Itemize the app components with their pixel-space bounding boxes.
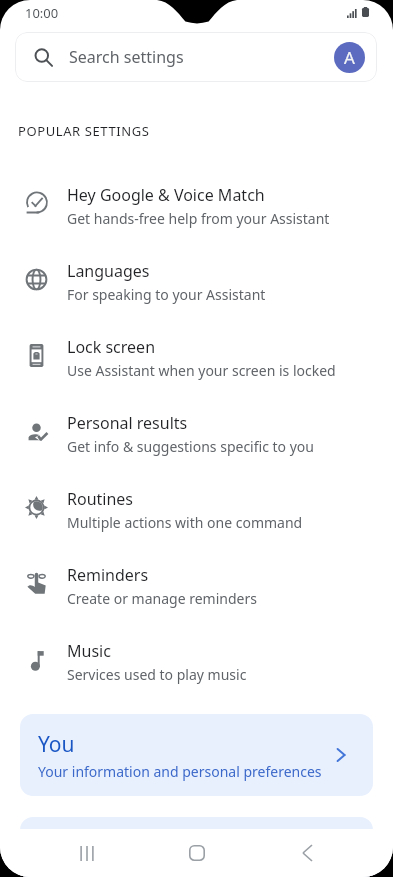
button[interactable]: You <box>20 714 373 796</box>
staticText: POPULAR SETTINGS <box>18 122 150 140</box>
staticText: For speaking to your Assistant <box>67 285 266 304</box>
button[interactable]: Routines <box>0 472 393 548</box>
staticText: You <box>38 730 75 759</box>
staticText: 10:00 <box>25 4 59 22</box>
staticText: Music <box>67 640 111 662</box>
staticText: Multiple actions with one command <box>67 513 303 532</box>
button[interactable]: Home <box>173 829 221 877</box>
button[interactable]: Account <box>334 42 365 73</box>
staticText: Hey Google & Voice Match <box>67 184 265 206</box>
staticText: Services <box>38 833 119 862</box>
staticText: Reminders <box>67 564 149 586</box>
staticText: Get hands-free help from your Assistant <box>67 209 330 228</box>
button[interactable]: Languages <box>0 244 393 320</box>
button[interactable]: Reminders <box>0 548 393 624</box>
staticText: Your information and personal preference… <box>38 762 322 781</box>
staticText: Services used to play music <box>67 665 247 684</box>
button[interactable]: Search settings <box>15 32 377 82</box>
staticText: Languages <box>67 260 150 282</box>
staticText: Personal results <box>67 412 188 434</box>
button[interactable]: Lock screen <box>0 320 393 396</box>
staticText: Create or manage reminders <box>67 589 257 608</box>
button[interactable]: Back <box>283 829 331 877</box>
staticText: Get info & suggestions specific to you <box>67 437 314 456</box>
staticText: Routines <box>67 488 134 510</box>
button[interactable]: Services <box>20 817 373 877</box>
button[interactable]: Hey Google & Voice Match <box>0 168 393 244</box>
staticText: Lock screen <box>67 336 156 358</box>
button[interactable]: Personal results <box>0 396 393 472</box>
staticText: A <box>344 46 355 69</box>
button[interactable]: Recent apps <box>63 829 111 877</box>
staticText: Use Assistant when your screen is locked <box>67 361 336 380</box>
staticText: Search settings <box>69 46 184 68</box>
button[interactable]: Music <box>0 624 393 700</box>
